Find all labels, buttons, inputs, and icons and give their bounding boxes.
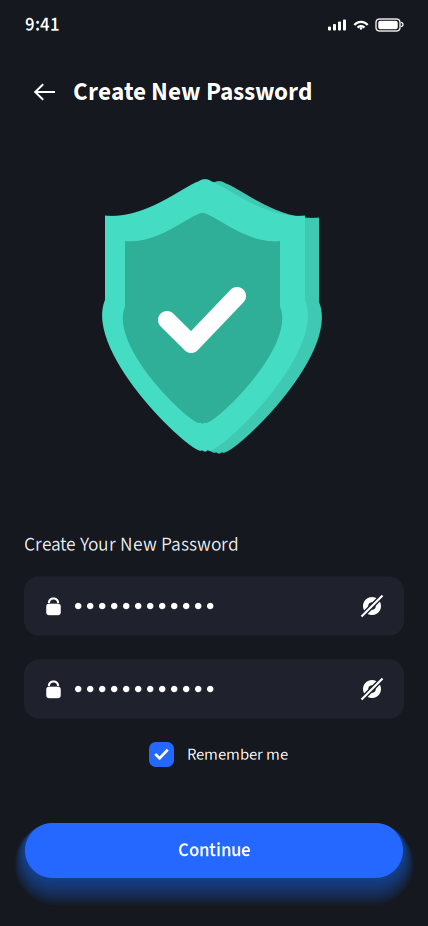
staticText: Create New Password	[73, 74, 313, 110]
button[interactable]: Remember me	[149, 736, 288, 773]
staticText: 9:41	[25, 12, 60, 38]
staticText: Create Your New Password	[24, 531, 239, 558]
staticText: Continue	[178, 837, 250, 864]
button[interactable]: Show password	[361, 664, 404, 714]
button[interactable]: Show password	[361, 581, 404, 631]
staticText: Remember me	[187, 743, 288, 766]
button[interactable]: Back	[24, 71, 66, 113]
button[interactable]: Continue	[25, 823, 403, 878]
